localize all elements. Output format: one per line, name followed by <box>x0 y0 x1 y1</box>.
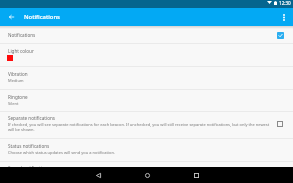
button[interactable]: Back <box>3 9 19 25</box>
button[interactable]: Sound notifications <box>0 162 293 167</box>
button[interactable]: Home <box>140 167 154 183</box>
button[interactable]: Ringtone <box>0 90 293 111</box>
button[interactable]: Back <box>91 167 105 183</box>
button[interactable]: Recent apps <box>189 167 203 183</box>
staticText: Notifications <box>8 32 36 38</box>
staticText: Notifications <box>24 13 60 21</box>
staticText: Ringtone <box>8 94 28 100</box>
staticText: Vibration <box>8 71 28 77</box>
staticText: Separate notifications <box>8 115 56 121</box>
staticText: Choose which status updates will send yo… <box>8 150 115 155</box>
button[interactable]: Separate notifications <box>0 112 293 138</box>
button[interactable] <box>275 30 285 40</box>
staticText: Silent <box>8 101 19 106</box>
button[interactable]: More options <box>277 8 291 26</box>
staticText: Sound notifications <box>8 165 50 170</box>
staticText: Light colour <box>8 48 34 54</box>
staticText: If checked, you will see separate notifi… <box>8 122 272 132</box>
staticText: 12:30 <box>279 0 291 6</box>
button[interactable]: Notifications <box>0 26 293 43</box>
button[interactable] <box>275 119 285 129</box>
staticText: Status notifications <box>8 143 50 149</box>
staticText: Medium <box>8 78 24 83</box>
button[interactable]: Vibration <box>0 67 293 89</box>
button[interactable]: Status notifications <box>0 139 293 161</box>
button[interactable]: Light colour <box>0 44 293 66</box>
